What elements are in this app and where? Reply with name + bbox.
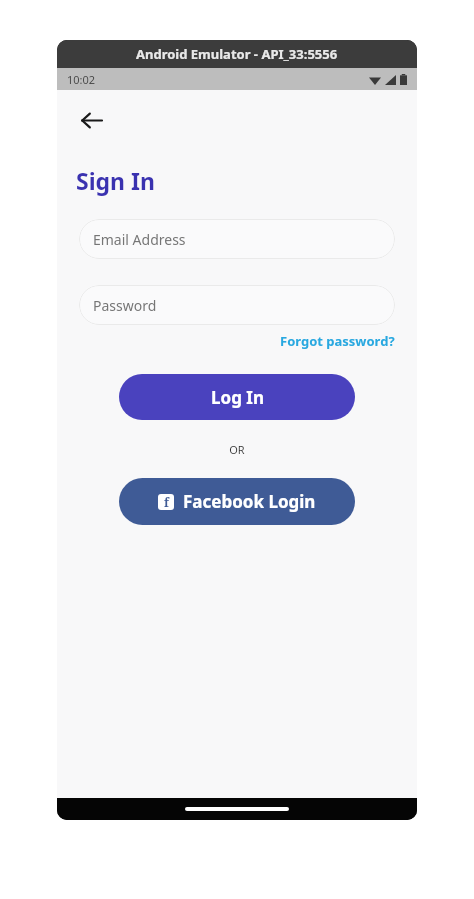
staticText: OR (229, 442, 245, 457)
staticText: Sign In (76, 165, 155, 196)
button[interactable]: f (119, 478, 355, 525)
staticText: Android Emulator - API_33:5556 (136, 45, 338, 63)
button[interactable]: Forgot password? (280, 332, 395, 350)
staticText: Forgot password? (280, 332, 395, 350)
staticText: 10:02 (67, 72, 96, 87)
staticText: Password (93, 296, 157, 315)
button[interactable]: Back (69, 98, 113, 142)
button[interactable]: Log In (119, 374, 355, 420)
staticText: Facebook Login (183, 490, 316, 513)
staticText: Email Address (93, 230, 186, 249)
button[interactable]: Password (79, 285, 395, 325)
staticText: Log In (211, 386, 264, 409)
button[interactable]: Email Address (79, 219, 395, 259)
staticText: f (164, 494, 169, 510)
